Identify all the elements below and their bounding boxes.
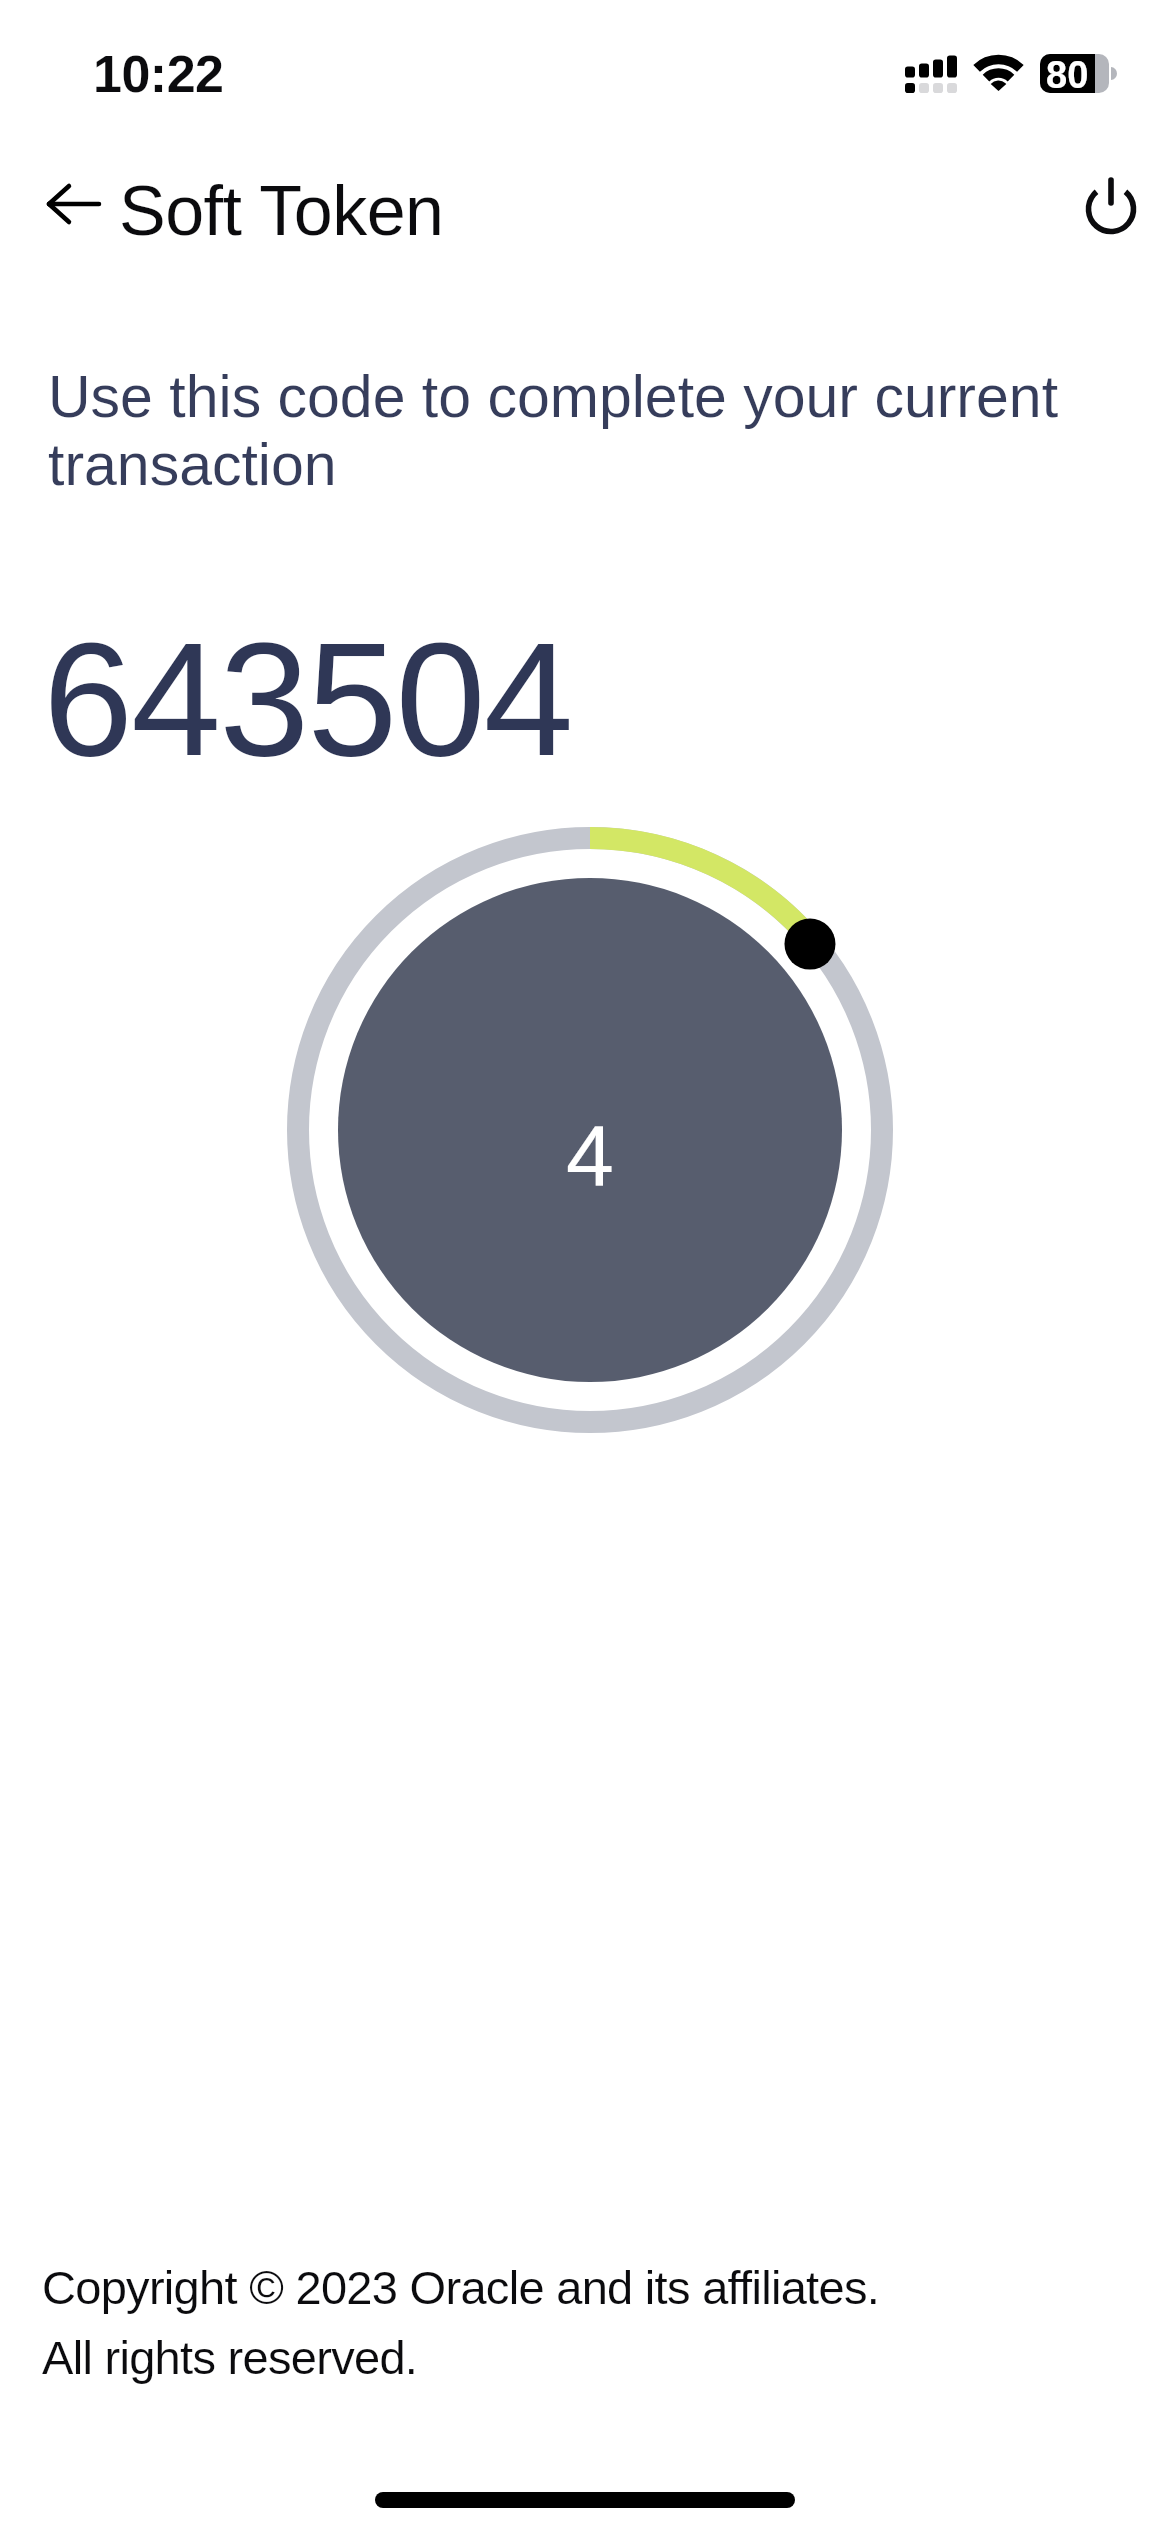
button[interactable] [34, 168, 114, 240]
staticText: 80 [1046, 54, 1089, 93]
staticText: 10:22 [93, 45, 224, 103]
staticText: Use this code to complete your current t… [48, 364, 1059, 497]
staticText: Copyright © 2023 Oracle and its affiliat… [42, 2261, 880, 2314]
staticText: 4 [566, 1107, 614, 1203]
staticText: 643504 [43, 608, 572, 789]
staticText: Soft Token [119, 172, 444, 250]
button[interactable] [1076, 170, 1146, 240]
staticText: All rights reserved. [42, 2331, 418, 2384]
